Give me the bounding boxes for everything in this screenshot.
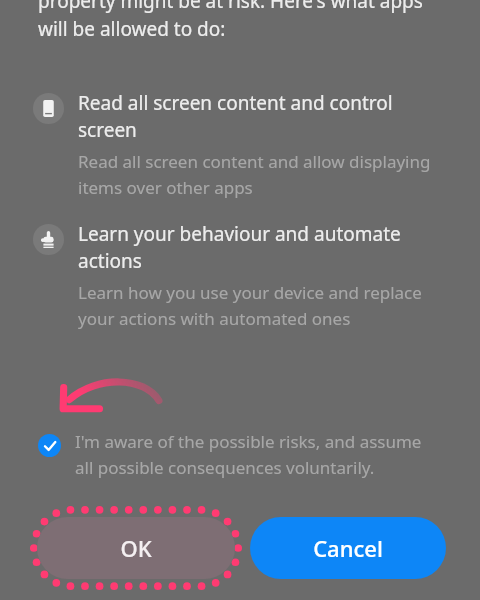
staticText: Read all screen content and allow displa… [78, 150, 431, 199]
button[interactable]: I'm aware of the possible risks, and ass… [0, 426, 480, 483]
button[interactable]: Gestures [0, 221, 480, 330]
staticText: Learn your behaviour and automate action… [78, 221, 401, 274]
button[interactable]: Screen content [0, 90, 480, 199]
staticText: property might be at risk. Here's what a… [38, 0, 423, 42]
staticText: OK [120, 533, 152, 563]
other: Gestures [33, 224, 64, 255]
button[interactable]: OK [37, 517, 235, 579]
staticText: Cancel [313, 533, 383, 563]
staticText: Learn how you use your device and replac… [78, 281, 422, 330]
staticText: I'm aware of the possible risks, and ass… [75, 430, 422, 479]
other: Screen content [33, 93, 64, 124]
staticText: Read all screen content and control scre… [78, 90, 393, 143]
button[interactable]: Cancel [250, 517, 446, 579]
